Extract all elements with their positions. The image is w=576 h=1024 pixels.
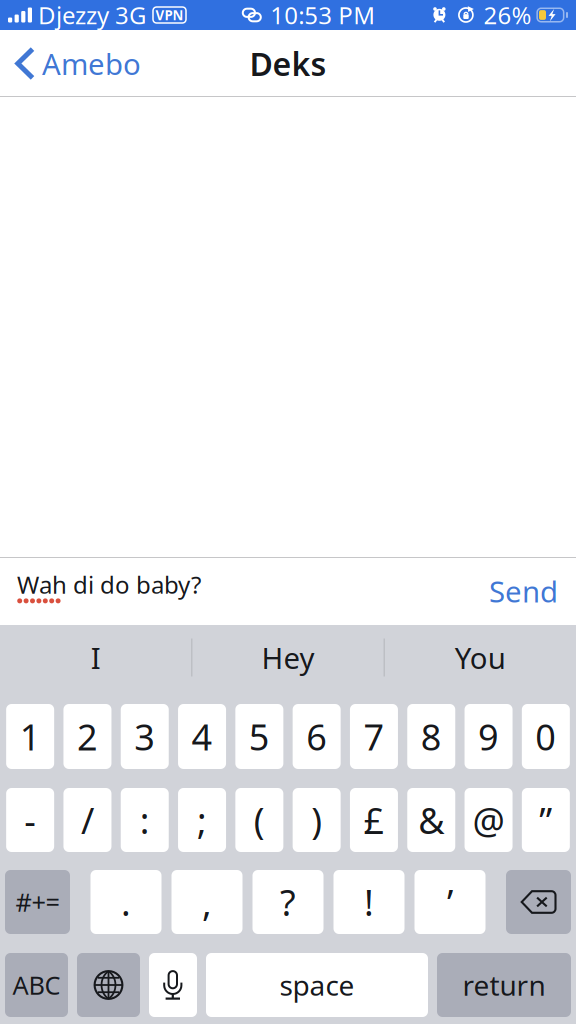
- button[interactable]: £: [350, 788, 398, 852]
- button[interactable]: :: [121, 788, 169, 852]
- staticText: 5: [249, 713, 270, 760]
- staticText: 1: [20, 713, 41, 760]
- button[interactable]: Amebo: [0, 30, 153, 97]
- staticText: 2: [77, 713, 98, 760]
- button[interactable]: .: [90, 870, 161, 934]
- staticText: -: [24, 796, 36, 844]
- staticText: Djezzy 3G: [38, 0, 146, 31]
- staticText: ;: [197, 796, 207, 844]
- staticText: /: [81, 796, 94, 844]
- button[interactable]: Hey: [192, 625, 384, 690]
- button[interactable]: @: [465, 788, 513, 852]
- button[interactable]: ABC: [5, 953, 68, 1017]
- staticText: ’: [447, 878, 453, 926]
- staticText: ,: [202, 878, 212, 926]
- staticText: Send: [489, 571, 558, 610]
- button[interactable]: 2: [63, 704, 111, 769]
- button[interactable]: Dictate: [149, 953, 197, 1017]
- staticText: !: [364, 878, 374, 926]
- staticText: :: [140, 796, 150, 844]
- staticText: 0: [535, 713, 556, 760]
- button[interactable]: ’: [414, 870, 485, 934]
- button[interactable]: Delete: [506, 870, 571, 934]
- button[interactable]: 8: [407, 704, 455, 769]
- staticText: Wah di do baby?: [17, 568, 201, 600]
- button[interactable]: You: [385, 625, 576, 690]
- staticText: 8: [421, 713, 442, 760]
- button[interactable]: ): [293, 788, 341, 852]
- staticText: ): [311, 796, 322, 844]
- staticText: ABC: [12, 968, 60, 1002]
- button[interactable]: -: [6, 788, 54, 852]
- staticText: 7: [363, 713, 384, 760]
- button[interactable]: !: [333, 870, 404, 934]
- staticText: ?: [280, 878, 296, 926]
- button[interactable]: Send: [469, 557, 558, 624]
- staticText: 4: [191, 713, 212, 760]
- button[interactable]: 6: [293, 704, 341, 769]
- staticText: 26%: [483, 0, 531, 31]
- staticText: 9: [478, 713, 499, 760]
- button[interactable]: &: [407, 788, 455, 852]
- staticText: return: [462, 966, 545, 1004]
- staticText: (: [254, 796, 265, 844]
- staticText: @: [473, 796, 505, 844]
- staticText: &: [418, 796, 444, 844]
- staticText: Deks: [249, 42, 326, 85]
- staticText: 10:53 PM: [270, 0, 375, 31]
- button[interactable]: return: [437, 953, 571, 1017]
- staticText: Hey: [261, 638, 314, 677]
- staticText: You: [455, 638, 506, 677]
- button[interactable]: 1: [6, 704, 54, 769]
- button[interactable]: space: [206, 953, 428, 1017]
- staticText: space: [279, 966, 354, 1004]
- button[interactable]: ,: [171, 870, 242, 934]
- button[interactable]: ;: [178, 788, 226, 852]
- staticText: £: [363, 796, 384, 844]
- staticText: VPN: [155, 6, 183, 24]
- button[interactable]: 0: [522, 704, 570, 769]
- button[interactable]: 9: [465, 704, 513, 769]
- button[interactable]: #+=: [5, 870, 70, 934]
- button[interactable]: Switch keyboard: [77, 953, 140, 1017]
- button[interactable]: 4: [178, 704, 226, 769]
- button[interactable]: I: [0, 625, 191, 690]
- staticText: Amebo: [42, 44, 141, 83]
- button[interactable]: ?: [252, 870, 323, 934]
- button[interactable]: 5: [235, 704, 283, 769]
- staticText: #+=: [15, 885, 59, 919]
- button[interactable]: (: [235, 788, 283, 852]
- button[interactable]: /: [63, 788, 111, 852]
- button[interactable]: ”: [522, 788, 570, 852]
- staticText: .: [121, 878, 131, 926]
- staticText: 6: [306, 713, 327, 760]
- button[interactable]: 3: [121, 704, 169, 769]
- staticText: I: [91, 638, 101, 677]
- staticText: 3: [134, 713, 155, 760]
- button[interactable]: 7: [350, 704, 398, 769]
- staticText: ”: [539, 796, 552, 844]
